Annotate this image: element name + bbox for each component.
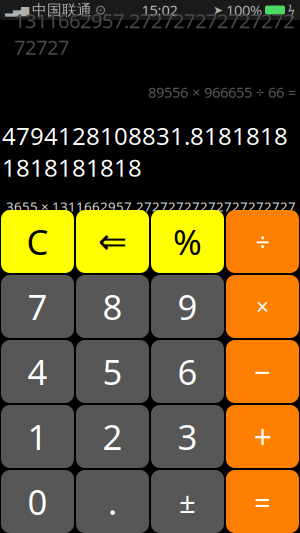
button[interactable]: % — [151, 210, 224, 273]
staticText: × — [256, 291, 269, 321]
staticText: 1311662957.27272727272727272727 — [14, 7, 294, 60]
button[interactable]: 3 — [151, 405, 224, 468]
staticText: ⇐ — [98, 222, 127, 261]
staticText: 8 — [102, 283, 122, 329]
button[interactable]: ⇐ — [76, 210, 149, 273]
button[interactable]: . — [76, 470, 149, 533]
button[interactable]: 7 — [1, 275, 74, 338]
staticText: ▂▄▆ — [5, 4, 29, 16]
staticText: 3 — [177, 413, 197, 459]
staticText: ⊙ — [95, 2, 106, 17]
staticText: 9 — [177, 283, 197, 329]
button[interactable]: ± — [151, 470, 224, 533]
button[interactable]: 1 — [1, 405, 74, 468]
staticText: ϟ — [288, 2, 295, 18]
button[interactable]: C — [1, 210, 74, 273]
staticText: . — [108, 478, 117, 524]
staticText: 7 — [27, 283, 47, 329]
staticText: C — [26, 218, 48, 264]
button[interactable]: 8 — [76, 275, 149, 338]
staticText: ➤ — [213, 3, 223, 17]
staticText: 6 — [177, 348, 197, 394]
button[interactable]: = — [226, 470, 299, 533]
staticText: 4 — [27, 348, 47, 394]
staticText: 5 — [102, 348, 122, 394]
staticText: 89556 × 966655 ÷ 66 = — [148, 82, 296, 102]
staticText: 3655 × 1311662957.27272727272727272727 = — [6, 197, 296, 233]
staticText: 中国联通 — [32, 1, 92, 19]
button[interactable]: × — [226, 275, 299, 338]
staticText: ÷ — [255, 225, 269, 258]
button[interactable]: + — [226, 405, 299, 468]
button[interactable]: − — [226, 340, 299, 403]
staticText: % — [173, 218, 202, 264]
staticText: = — [254, 482, 271, 521]
button[interactable]: 6 — [151, 340, 224, 403]
button[interactable]: 0 — [1, 470, 74, 533]
button[interactable]: 9 — [151, 275, 224, 338]
staticText: 0 — [27, 478, 47, 524]
button[interactable]: 2 — [76, 405, 149, 468]
staticText: − — [254, 352, 271, 391]
staticText: 1 — [27, 413, 47, 459]
button[interactable]: ÷ — [226, 210, 299, 273]
staticText: 4794128108831.81818181818181818 — [2, 120, 288, 183]
staticText: 2 — [102, 413, 122, 459]
staticText: + — [253, 415, 271, 458]
staticText: 100% — [226, 0, 262, 20]
button[interactable]: 5 — [76, 340, 149, 403]
staticText: 15:02 — [141, 0, 177, 20]
staticText: ± — [179, 482, 196, 521]
button[interactable]: 4 — [1, 340, 74, 403]
